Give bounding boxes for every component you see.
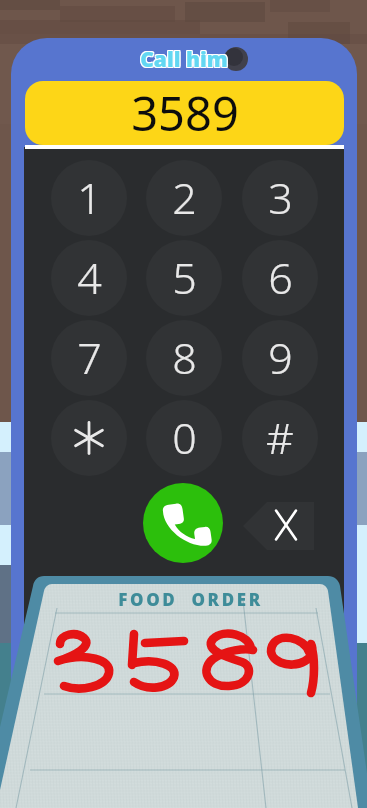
- staticText: 6: [268, 248, 293, 307]
- staticText: 1: [77, 168, 102, 227]
- staticText: Call him: [141, 46, 229, 74]
- staticText: #: [266, 408, 294, 467]
- staticText: 8: [172, 328, 197, 387]
- button[interactable]: 7: [51, 320, 127, 396]
- staticText: Call him: [139, 44, 227, 72]
- staticText: Call him: [141, 44, 229, 72]
- button[interactable]: #: [242, 400, 318, 476]
- staticText: Call him: [140, 46, 228, 74]
- button[interactable]: 8: [146, 320, 222, 396]
- button[interactable]: 3: [242, 160, 318, 236]
- button[interactable]: 1: [51, 160, 127, 236]
- staticText: 4: [77, 248, 102, 307]
- staticText: 7: [77, 328, 102, 387]
- button[interactable]: 3589: [25, 81, 344, 145]
- button[interactable]: 9: [242, 320, 318, 396]
- staticText: FOOD ORDER: [118, 588, 263, 608]
- button[interactable]: Call: [143, 483, 223, 563]
- staticText: 5: [172, 248, 197, 307]
- button[interactable]: 0: [146, 400, 222, 476]
- staticText: Call him: [140, 45, 228, 73]
- button[interactable]: 5: [146, 240, 222, 316]
- button[interactable]: 2: [146, 160, 222, 236]
- button[interactable]: 4: [51, 240, 127, 316]
- staticText: Call him: [140, 44, 228, 72]
- staticText: 0: [172, 408, 197, 467]
- staticText: Call him: [139, 46, 227, 74]
- button[interactable]: 6: [242, 240, 318, 316]
- staticText: 2: [172, 168, 197, 227]
- button[interactable]: Backspace: [243, 502, 314, 550]
- button[interactable]: *: [51, 400, 127, 476]
- staticText: Call him: [139, 45, 227, 73]
- staticText: 3589: [131, 81, 239, 145]
- staticText: Call him: [141, 45, 229, 73]
- staticText: 3: [268, 168, 293, 227]
- staticText: 9: [268, 328, 293, 387]
